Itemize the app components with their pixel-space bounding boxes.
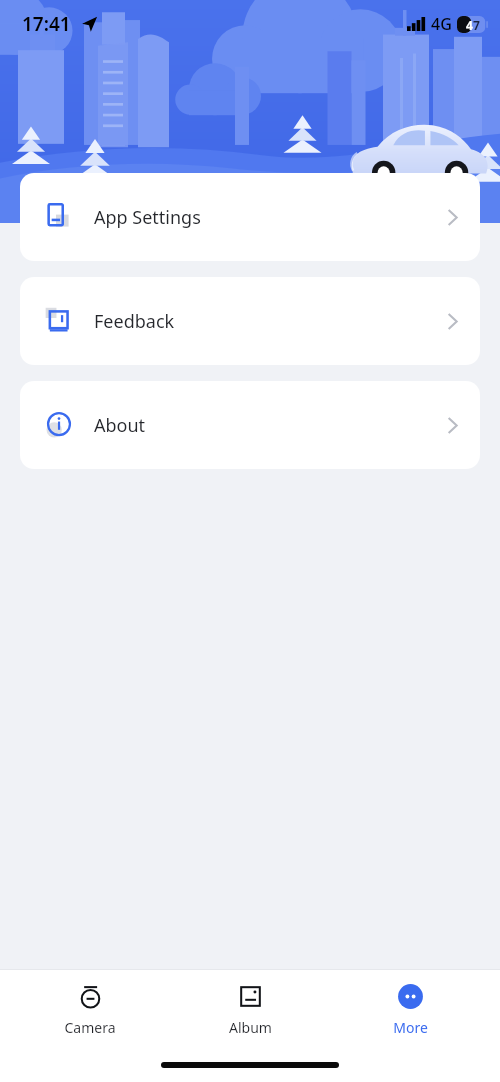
button[interactable]: About — [20, 381, 480, 469]
button[interactable]: Album — [180, 975, 320, 1043]
other: Album — [237, 983, 264, 1010]
staticText: App Settings — [94, 205, 201, 230]
other: Camera — [77, 983, 104, 1010]
button[interactable]: Feedback — [20, 277, 480, 365]
staticText: More — [393, 1018, 428, 1037]
button[interactable]: Camera — [20, 975, 160, 1043]
staticText: 4 — [466, 17, 473, 33]
button[interactable]: More — [340, 975, 480, 1043]
staticText: 4G — [431, 13, 452, 35]
staticText: 17:41 — [22, 11, 71, 37]
button[interactable]: App Settings — [20, 173, 480, 261]
other: More — [397, 983, 424, 1010]
staticText: 7 — [473, 17, 480, 33]
staticText: Album — [229, 1018, 272, 1037]
staticText: Feedback — [94, 309, 175, 334]
staticText: About — [94, 413, 146, 438]
staticText: Camera — [64, 1018, 116, 1037]
